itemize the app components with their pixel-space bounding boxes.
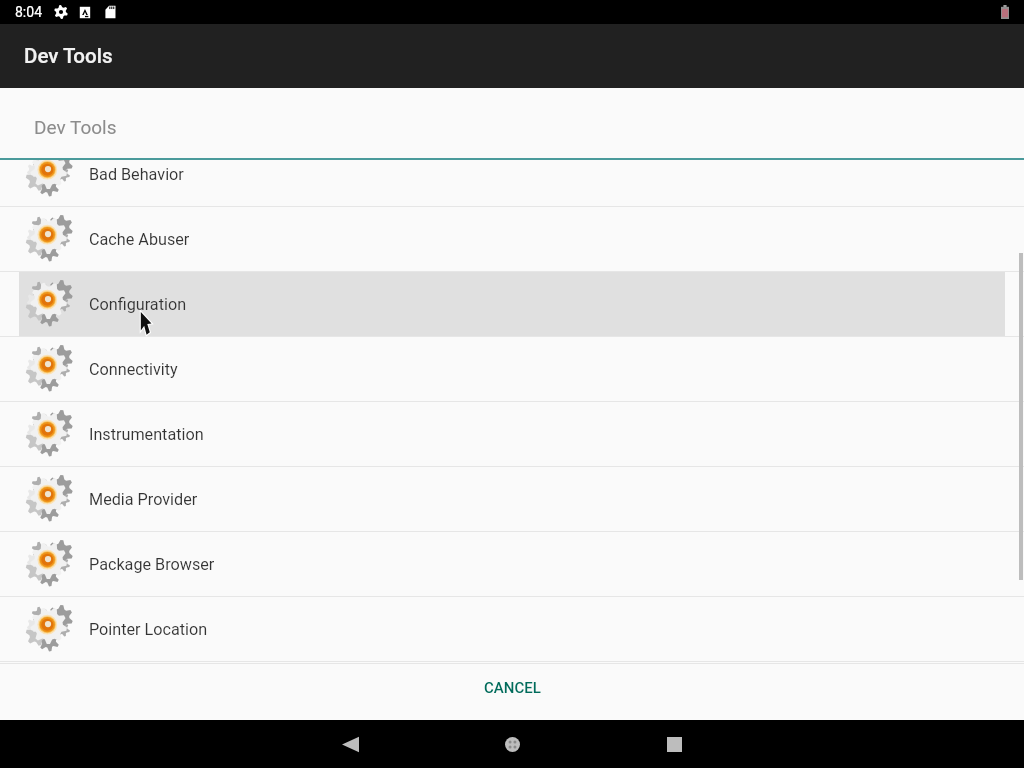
- staticText: Package Browser: [89, 555, 215, 574]
- staticText: CANCEL: [484, 679, 541, 697]
- staticText: Dev Tools: [24, 44, 113, 68]
- staticText: Pointer Location: [89, 620, 208, 639]
- staticText: Bad Behavior: [89, 165, 184, 184]
- button[interactable]: Instrumentation: [0, 402, 1024, 466]
- button[interactable]: Pointer Location: [0, 597, 1024, 661]
- button[interactable]: Connectivity: [0, 337, 1024, 401]
- staticText: Dev Tools: [34, 116, 117, 138]
- button[interactable]: Package Browser: [0, 532, 1024, 596]
- button[interactable]: Cache Abuser: [0, 207, 1024, 271]
- staticText: Connectivity: [89, 360, 178, 379]
- staticText: Cache Abuser: [89, 230, 190, 249]
- staticText: 8:04: [15, 4, 42, 20]
- button[interactable]: CANCEL: [0, 664, 1024, 720]
- button[interactable]: Media Provider: [0, 467, 1024, 531]
- button[interactable]: Bad Behavior: [0, 160, 1024, 206]
- staticText: Instrumentation: [89, 425, 204, 444]
- button[interactable]: Home: [457, 720, 567, 768]
- button[interactable]: Recents: [619, 720, 729, 768]
- staticText: Configuration: [89, 295, 187, 314]
- button[interactable]: Configuration: [0, 272, 1024, 336]
- staticText: Media Provider: [89, 490, 198, 509]
- button[interactable]: Back: [295, 720, 405, 768]
